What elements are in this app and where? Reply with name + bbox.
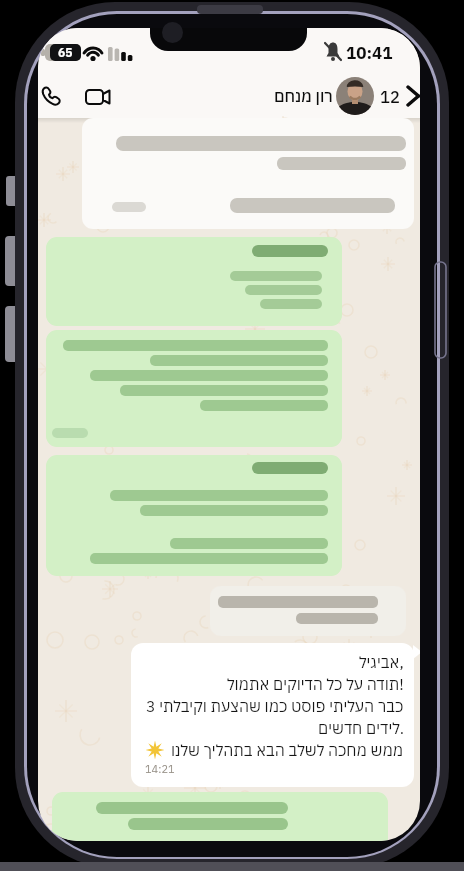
staticText: ממש מחכה לשלב הבא בתהליך שלנו xyxy=(171,740,404,761)
button[interactable] xyxy=(38,80,70,110)
staticText: 14:21 xyxy=(145,762,175,776)
button[interactable] xyxy=(46,237,342,326)
button[interactable] xyxy=(82,82,116,110)
button[interactable] xyxy=(46,330,342,447)
staticText: רון מנחם xyxy=(274,86,333,106)
button[interactable] xyxy=(46,455,342,576)
staticText: כבר העליתי פוסט כמו שהצעת וקיבלתי 3 xyxy=(146,696,404,717)
button[interactable] xyxy=(336,77,374,115)
button[interactable]: רון מנחם xyxy=(233,86,333,106)
button[interactable] xyxy=(376,80,420,112)
staticText: 10:41 xyxy=(346,42,393,64)
button[interactable] xyxy=(210,586,406,636)
button[interactable] xyxy=(131,643,414,787)
button[interactable] xyxy=(52,792,388,841)
staticText: 65 xyxy=(58,45,73,61)
staticText: 12 xyxy=(380,86,400,107)
staticText: תודה על כל הדיוקים אתמול! xyxy=(227,674,404,695)
staticText: לידים חדשים. xyxy=(318,718,404,739)
button[interactable] xyxy=(82,118,414,229)
staticText: אביגיל, xyxy=(359,652,404,673)
